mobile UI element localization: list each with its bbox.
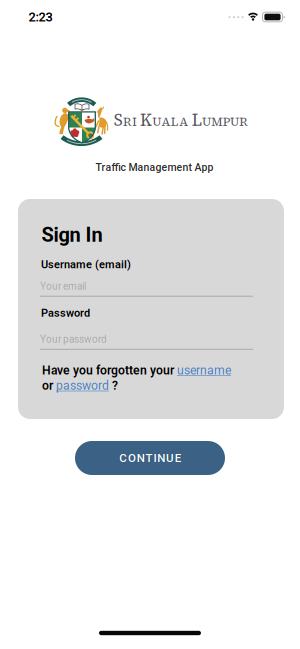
button[interactable]: username [177,363,231,377]
button[interactable]: Your email [40,280,253,297]
staticText: password [56,378,109,393]
staticText: or [42,378,56,393]
button[interactable]: Your password [40,334,253,350]
button[interactable]: password [56,378,109,393]
staticText: SRI KUALA LUMPUR [114,109,248,131]
staticText: Username (email) [41,258,131,271]
staticText: Your email [40,280,86,292]
staticText: Traffic Management App [95,161,213,174]
staticText: CONTINUE [119,451,181,465]
staticText: username [177,363,231,377]
staticText: Sign In [41,223,102,247]
button[interactable]: CONTINUE [75,441,225,475]
staticText: Password [41,307,90,319]
staticText: ? [109,378,118,393]
staticText: Have you forgotten your [42,363,177,377]
staticText: Your password [40,334,107,345]
staticText: 2:23 [28,9,52,24]
